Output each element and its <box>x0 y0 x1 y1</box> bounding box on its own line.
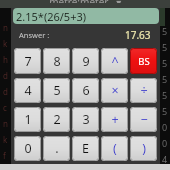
staticText: 5 <box>162 105 168 121</box>
staticText: n <box>3 22 8 38</box>
staticText: 0 <box>162 121 168 137</box>
button[interactable]: ( <box>101 136 128 161</box>
button[interactable]: 4 <box>14 78 41 103</box>
staticText: BS <box>138 55 150 68</box>
button[interactable]: × <box>101 78 128 103</box>
staticText: k <box>3 134 8 150</box>
button[interactable]: . <box>43 136 70 161</box>
staticText: 9 <box>82 53 90 70</box>
staticText: − <box>140 111 148 128</box>
staticText: 3 <box>82 111 90 128</box>
button[interactable]: BS <box>130 48 157 74</box>
staticText: E <box>82 140 89 157</box>
button[interactable]: ^ <box>101 48 128 74</box>
staticText: 7 <box>24 53 32 70</box>
staticText: ÷ <box>140 82 148 99</box>
button[interactable]: 2 <box>43 107 70 132</box>
staticText: 4 <box>162 153 168 169</box>
staticText: ) <box>142 140 146 157</box>
staticText: 5 <box>162 41 168 57</box>
staticText: 4 <box>24 82 32 99</box>
staticText: 5 <box>162 57 168 73</box>
staticText: d <box>3 70 8 86</box>
staticText: × <box>111 82 119 99</box>
button[interactable]: 1 <box>14 107 41 132</box>
staticText: 17.63 <box>125 28 151 42</box>
staticText: 0 <box>162 137 168 153</box>
button[interactable]: 0 <box>14 136 41 161</box>
staticText: 2 <box>53 111 61 128</box>
button[interactable]: 8 <box>43 48 70 74</box>
staticText: . <box>55 140 59 157</box>
button[interactable]: − <box>130 107 157 132</box>
button[interactable]: 6 <box>72 78 99 103</box>
staticText: 2.15*(26/5+3) <box>16 9 87 24</box>
staticText: + <box>111 111 119 128</box>
staticText: 5 <box>162 73 168 89</box>
button[interactable]: E <box>72 136 99 161</box>
staticText: f <box>3 150 6 166</box>
staticText: 0 <box>24 140 32 157</box>
button[interactable]: 3 <box>72 107 99 132</box>
button[interactable]: ) <box>130 136 157 161</box>
button[interactable]: 9 <box>72 48 99 74</box>
button[interactable]: 7 <box>14 48 41 74</box>
staticText: c <box>3 102 7 118</box>
staticText: Answer : <box>19 30 50 40</box>
staticText: 5 <box>162 89 168 105</box>
staticText: 5 <box>53 82 61 99</box>
staticText: metre;meter ▾ <box>44 0 127 3</box>
staticText: h <box>3 54 8 70</box>
staticText: 6 <box>82 82 90 99</box>
button[interactable]: + <box>101 107 128 132</box>
staticText: 1 <box>24 111 32 128</box>
staticText: n <box>3 118 8 134</box>
staticText: 8 <box>53 53 61 70</box>
button[interactable]: ÷ <box>130 78 157 103</box>
staticText: ^ <box>111 53 119 70</box>
button[interactable]: 5 <box>43 78 70 103</box>
staticText: ( <box>113 140 117 157</box>
staticText: k <box>3 38 8 54</box>
staticText: 5 <box>162 25 168 41</box>
staticText: d <box>3 86 8 102</box>
